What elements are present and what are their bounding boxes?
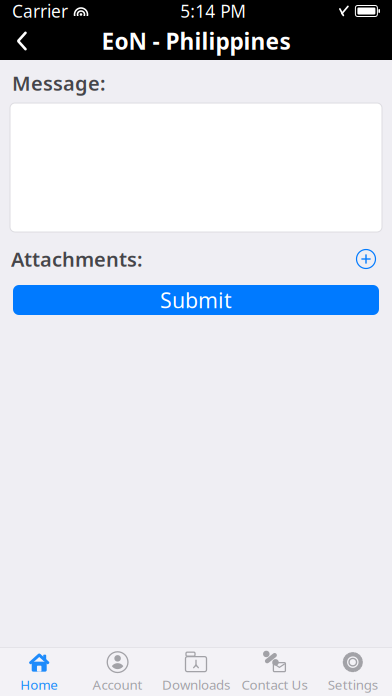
staticText: 5:14 PM <box>180 0 246 22</box>
button[interactable]: Downloads <box>157 648 235 696</box>
staticText: Account <box>93 676 143 693</box>
staticText: Home <box>20 676 58 693</box>
staticText: Submit <box>160 286 232 314</box>
staticText: Settings <box>328 676 378 693</box>
staticText: Contact Us <box>241 676 307 693</box>
staticText: EoN - Philippines <box>101 26 290 56</box>
staticText: Attachments: <box>11 246 143 272</box>
button[interactable]: Account <box>78 648 157 696</box>
staticText: Message: <box>12 70 106 96</box>
button[interactable]: Settings <box>314 648 392 696</box>
button[interactable]: Contact Us <box>235 648 314 696</box>
staticText: Carrier <box>12 0 68 22</box>
button[interactable]: Submit <box>13 285 379 315</box>
button[interactable]: Add attachment <box>351 244 381 274</box>
button[interactable]: Home <box>0 648 78 696</box>
button[interactable]: Back <box>0 22 44 60</box>
staticText: Downloads <box>162 676 230 693</box>
